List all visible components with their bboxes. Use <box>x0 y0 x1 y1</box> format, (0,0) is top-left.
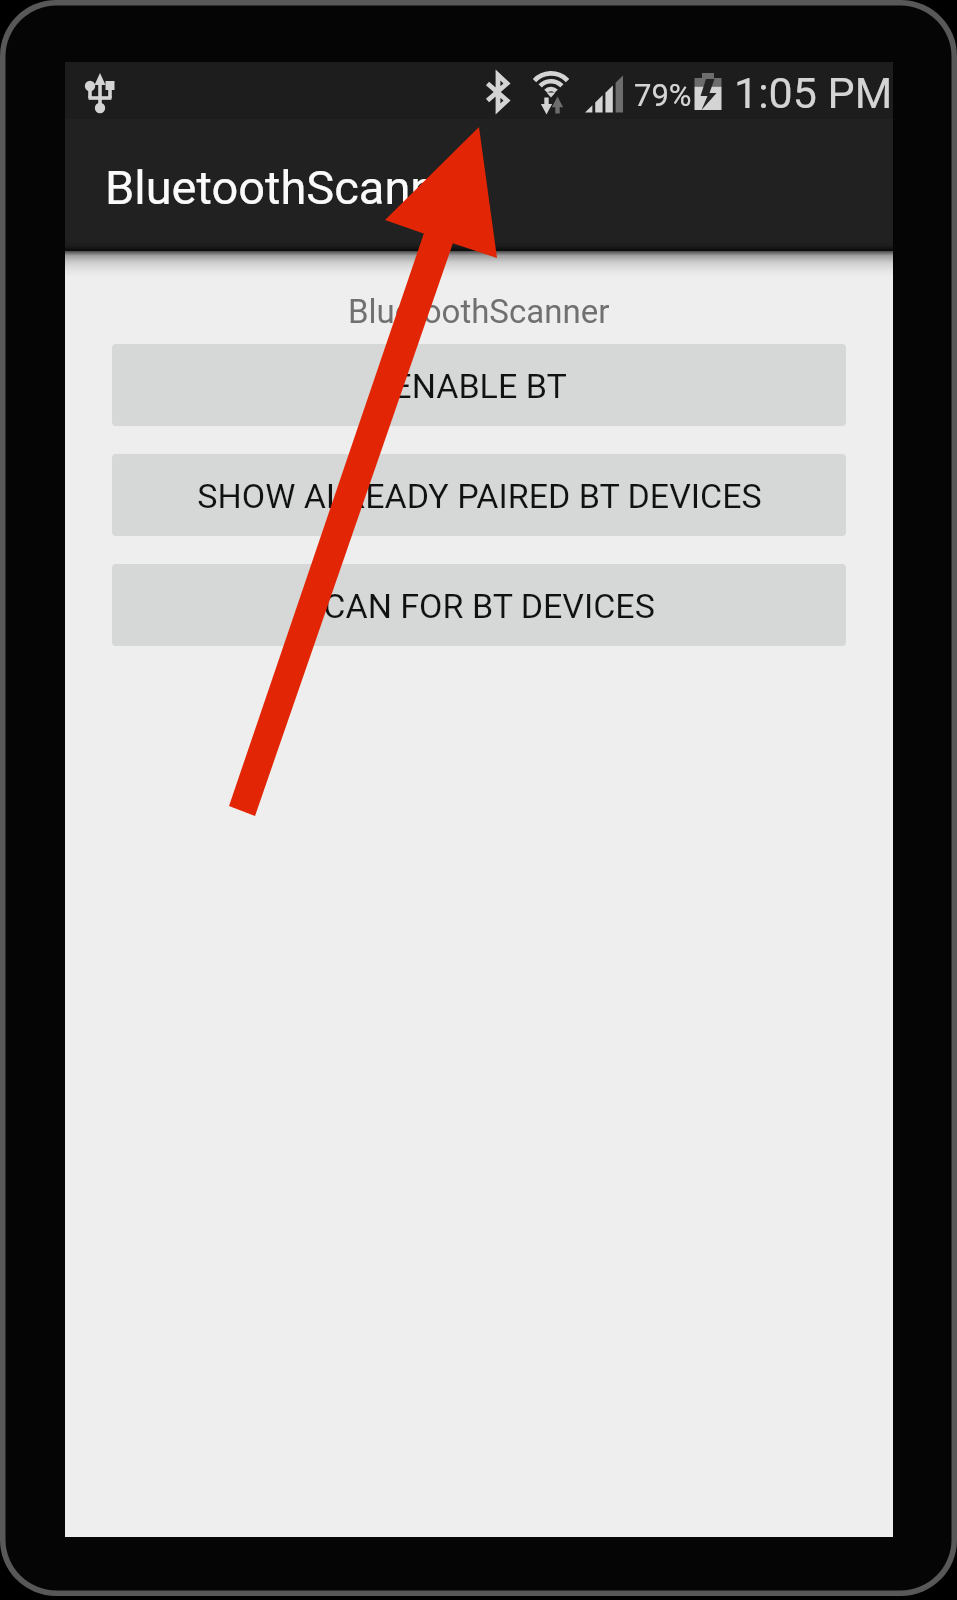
staticText: BluetoothScanner <box>348 292 610 331</box>
staticText: 79% <box>634 77 692 113</box>
button[interactable]: SCAN FOR BT DEVICES <box>112 564 846 646</box>
button[interactable]: ENABLE BT <box>112 344 846 426</box>
staticText: 1:05 PM <box>734 68 893 118</box>
staticText: BluetoothScanner <box>105 160 478 215</box>
staticText: SCAN FOR BT DEVICES <box>303 586 655 626</box>
button[interactable]: SHOW ALREADY PAIRED BT DEVICES <box>112 454 846 536</box>
staticText: ENABLE BT <box>392 366 567 406</box>
staticText: SHOW ALREADY PAIRED BT DEVICES <box>197 476 762 516</box>
